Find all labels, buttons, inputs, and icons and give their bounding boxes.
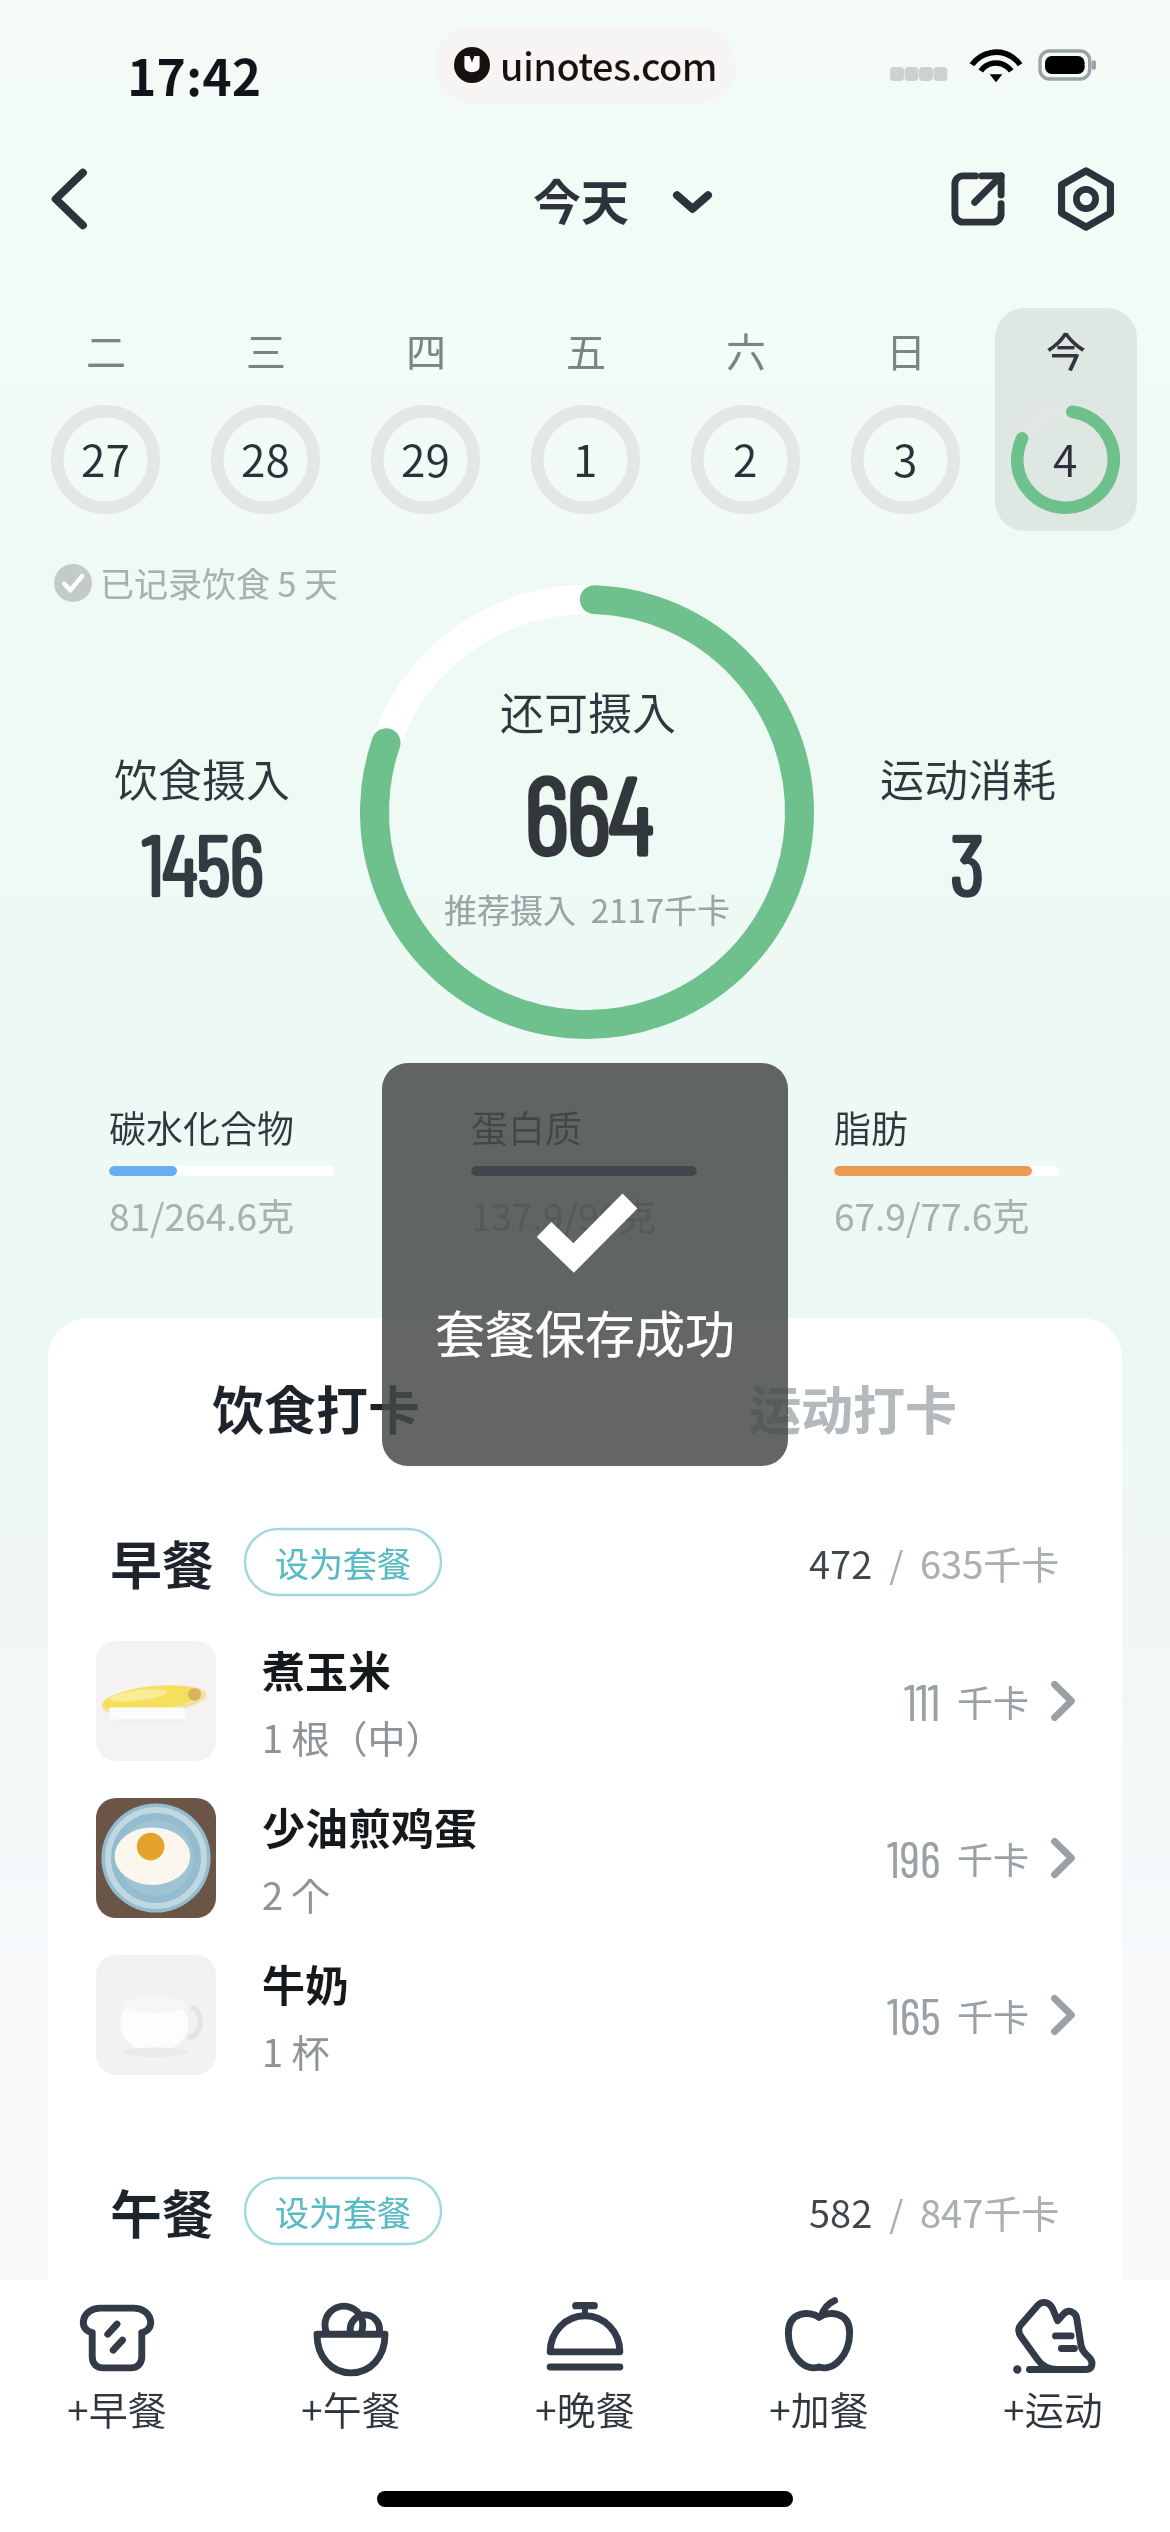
staticText: 碳水化合物	[109, 1100, 294, 1154]
staticText: 饮食打卡	[212, 1370, 421, 1445]
staticText: 137.9/90克	[471, 1188, 656, 1242]
staticText: +午餐	[301, 2380, 401, 2436]
staticText: 脂肪	[834, 1100, 908, 1154]
staticText: +早餐	[67, 2380, 167, 2436]
staticText: 二	[86, 321, 126, 379]
staticText: 套餐保存成功	[382, 1295, 788, 1367]
staticText: 29	[401, 426, 450, 490]
staticText: 千卡	[957, 1675, 1030, 1727]
button[interactable]: 五	[505, 308, 665, 531]
button[interactable]: 六	[665, 308, 825, 531]
staticText: 运动打卡	[749, 1370, 958, 1445]
staticText: uinotes.com	[500, 37, 717, 92]
button[interactable]: 设为套餐	[245, 2178, 441, 2244]
staticText: 运动消耗	[880, 746, 1056, 810]
staticText: 六	[726, 321, 766, 379]
staticText: 196	[887, 1828, 941, 1888]
button[interactable]: +晚餐	[468, 2280, 702, 2532]
button[interactable]: +午餐	[234, 2280, 468, 2532]
staticText: 今	[1046, 321, 1086, 379]
staticText: 847千卡	[920, 2184, 1060, 2239]
staticText: /	[873, 1537, 920, 1589]
staticText: +运动	[1003, 2380, 1103, 2436]
staticText: 推荐摄入 2117千卡	[444, 885, 731, 933]
staticText: 1	[573, 426, 598, 490]
staticText: 635千卡	[920, 1535, 1060, 1590]
button[interactable]: Back	[22, 151, 118, 247]
staticText: 千卡	[957, 1832, 1030, 1884]
staticText: 664	[524, 745, 651, 877]
staticText: 设为套餐	[275, 2187, 411, 2236]
staticText: 饮食摄入	[114, 746, 290, 810]
staticText: 582	[809, 2184, 873, 2239]
button[interactable]: Settings	[1038, 151, 1134, 247]
staticText: 设为套餐	[275, 1538, 411, 1587]
staticText: 1 杯	[262, 2023, 330, 2078]
staticText: 1 根（中）	[262, 1709, 444, 1764]
button[interactable]: +加餐	[702, 2280, 936, 2532]
staticText: 165	[887, 1985, 941, 2045]
staticText: 2	[733, 426, 758, 490]
staticText: 早餐	[110, 1525, 215, 1600]
button[interactable]: 饮食打卡	[48, 1352, 585, 1462]
staticText: 472	[809, 1535, 873, 1590]
button[interactable]: 少油煎鸡蛋	[48, 1780, 1122, 1936]
staticText: 今天	[533, 164, 630, 234]
button[interactable]: Share	[930, 151, 1026, 247]
button[interactable]: 三	[185, 308, 345, 531]
staticText: 3	[893, 426, 918, 490]
staticText: 还可摄入	[500, 679, 676, 743]
staticText: 午餐	[110, 2174, 215, 2249]
staticText: 蛋白质	[471, 1100, 582, 1154]
staticText: 日	[886, 321, 926, 379]
staticText: /	[873, 2186, 920, 2238]
staticText: 2 个	[262, 1866, 330, 1921]
staticText: 111	[904, 1671, 941, 1731]
staticText: 五	[566, 321, 606, 379]
staticText: +加餐	[769, 2380, 869, 2436]
staticText: 千卡	[957, 1989, 1030, 2041]
button[interactable]: 运动打卡	[585, 1352, 1122, 1462]
button[interactable]: 日	[825, 308, 985, 531]
staticText: 四	[406, 321, 446, 379]
staticText: 4	[1053, 426, 1078, 490]
staticText: 28	[241, 426, 290, 490]
staticText: 牛奶	[262, 1952, 348, 2014]
button[interactable]: 今天	[523, 164, 718, 234]
staticText: 81/264.6克	[109, 1188, 294, 1242]
button[interactable]: +早餐	[0, 2280, 234, 2532]
staticText: 67.9/77.6克	[834, 1188, 1030, 1242]
staticText: +晚餐	[535, 2380, 635, 2436]
staticText: 1456	[142, 810, 263, 913]
button[interactable]: 四	[345, 308, 505, 531]
button[interactable]: 煮玉米	[48, 1623, 1122, 1779]
staticText: 三	[246, 321, 286, 379]
staticText: 27	[81, 426, 130, 490]
staticText: 煮玉米	[262, 1638, 391, 1700]
button[interactable]: 牛奶	[48, 1937, 1122, 2093]
button[interactable]: 今	[985, 308, 1145, 531]
button[interactable]: +运动	[936, 2280, 1170, 2532]
staticText: 已记录饮食 5 天	[100, 558, 339, 607]
staticText: 17:42	[127, 38, 262, 110]
button[interactable]: 二	[25, 308, 185, 531]
staticText: 3	[950, 810, 986, 913]
staticText: 少油煎鸡蛋	[262, 1795, 477, 1857]
button[interactable]: 设为套餐	[245, 1529, 441, 1595]
